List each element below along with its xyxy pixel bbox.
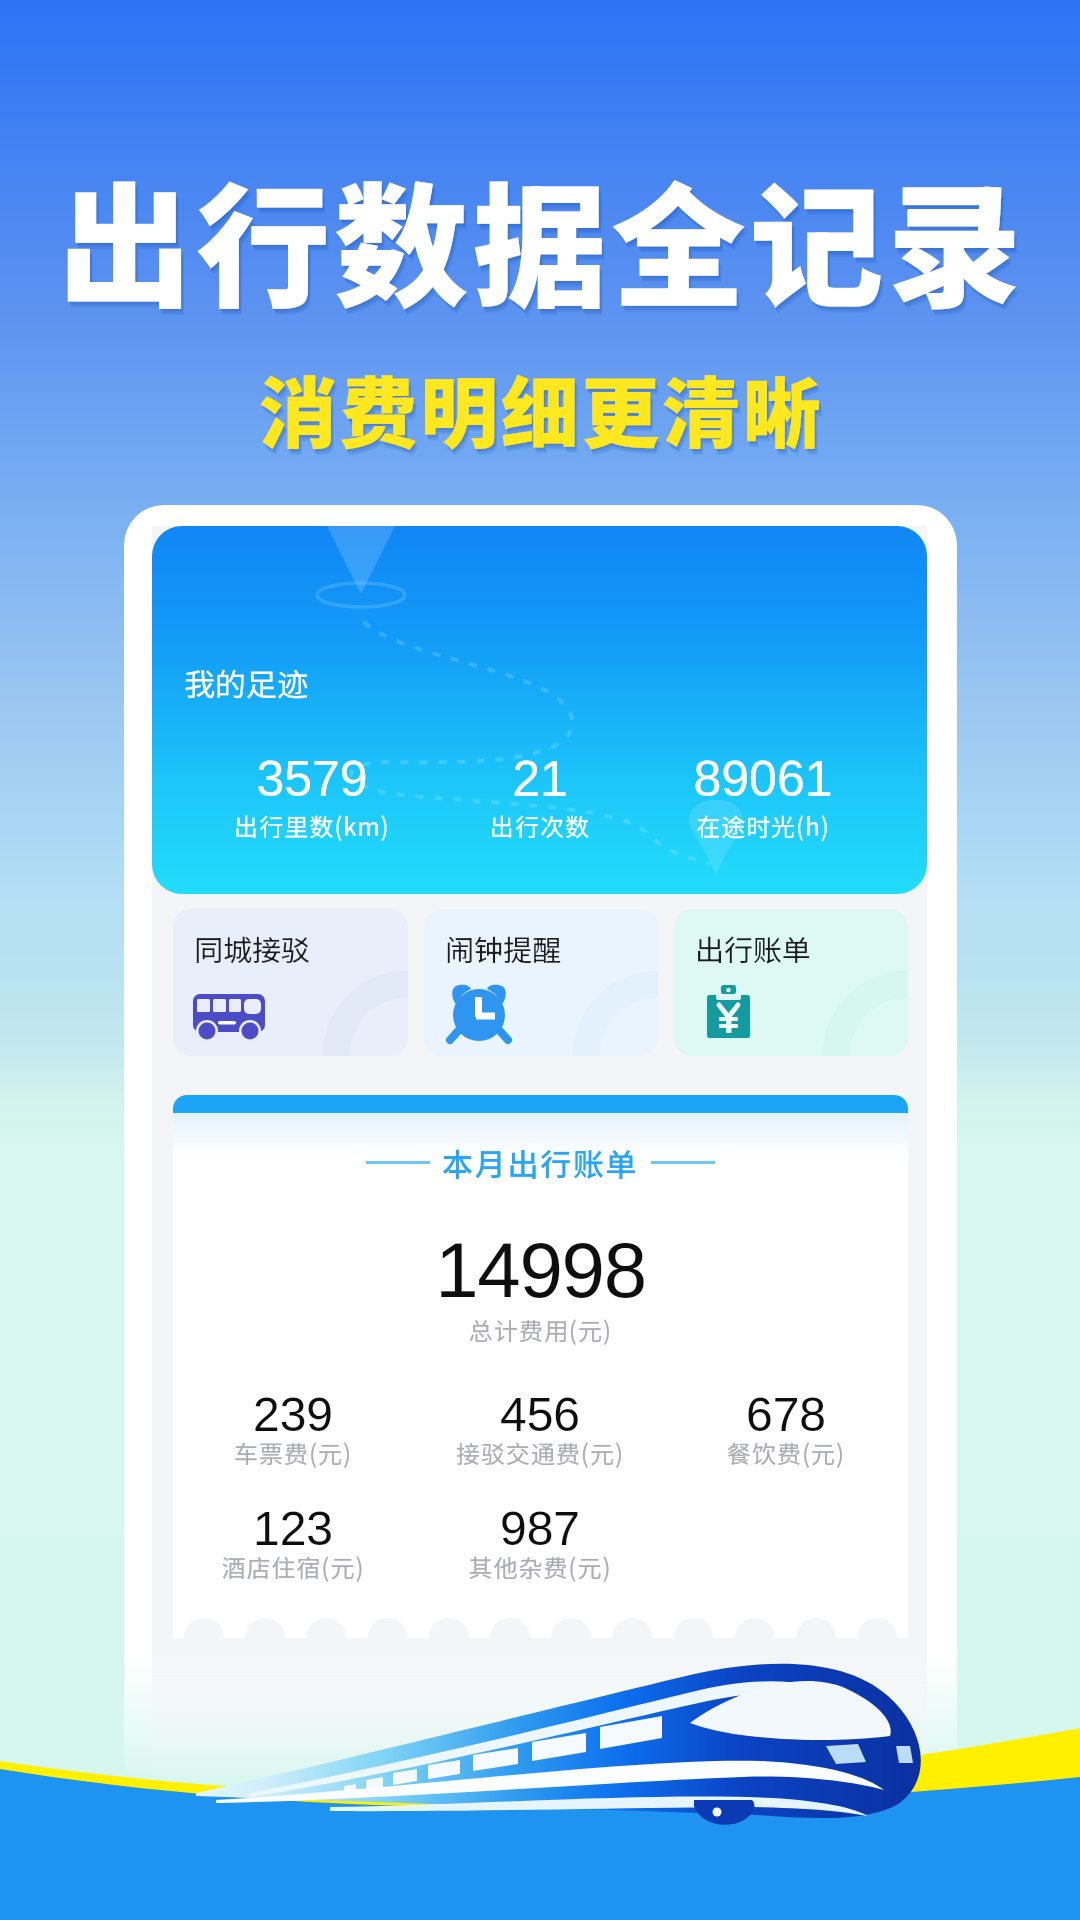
- staticText: 出行数据全记录: [5, 147, 1080, 341]
- staticText: 出行数据全记录: [4, 145, 1080, 339]
- staticText: 同城接驳: [194, 927, 311, 969]
- staticText: 出行里数(km): [182, 808, 442, 843]
- staticText: 678: [656, 1388, 916, 1442]
- staticText: 14998: [173, 1226, 908, 1313]
- staticText: 3579: [182, 751, 442, 807]
- staticText: 消费明细更清晰: [1, 352, 1080, 465]
- staticText: 89061: [633, 751, 893, 807]
- staticText: 出行账单: [695, 927, 812, 969]
- staticText: 我的足迹: [184, 660, 308, 705]
- staticText: 消费明细更清晰: [3, 356, 1080, 469]
- staticText: 闹钟提醒: [445, 927, 562, 969]
- staticText: 出行次数: [410, 808, 670, 843]
- staticText: 本月出行账单: [442, 1140, 639, 1185]
- staticText: 消费明细更清晰: [1, 352, 1080, 465]
- staticText: 在途时光(h): [633, 808, 893, 843]
- staticText: 车票费(元): [163, 1435, 423, 1470]
- staticText: 239: [163, 1388, 423, 1442]
- staticText: 21: [410, 751, 670, 807]
- staticText: 123: [163, 1502, 423, 1556]
- staticText: 总计费用(元): [173, 1312, 908, 1347]
- button[interactable]: 闹钟提醒: [424, 909, 658, 1056]
- staticText: 酒店住宿(元): [163, 1549, 423, 1584]
- button[interactable]: 本月出行账单: [173, 1095, 908, 1640]
- button[interactable]: 出行账单: [674, 909, 908, 1056]
- staticText: 987: [410, 1502, 670, 1556]
- staticText: 餐饮费(元): [656, 1435, 916, 1470]
- staticText: 接驳交通费(元): [410, 1435, 670, 1470]
- button[interactable]: 同城接驳: [173, 909, 408, 1056]
- staticText: 出行数据全记录: [2, 141, 1080, 335]
- staticText: 消费明细更清晰: [2, 354, 1080, 467]
- staticText: 出行数据全记录: [2, 141, 1080, 335]
- staticText: 消费明细更清晰: [4, 358, 1080, 471]
- staticText: 其他杂费(元): [410, 1549, 670, 1584]
- staticText: 出行数据全记录: [3, 143, 1080, 337]
- staticText: 456: [410, 1388, 670, 1442]
- button[interactable]: 我的足迹: [152, 526, 927, 894]
